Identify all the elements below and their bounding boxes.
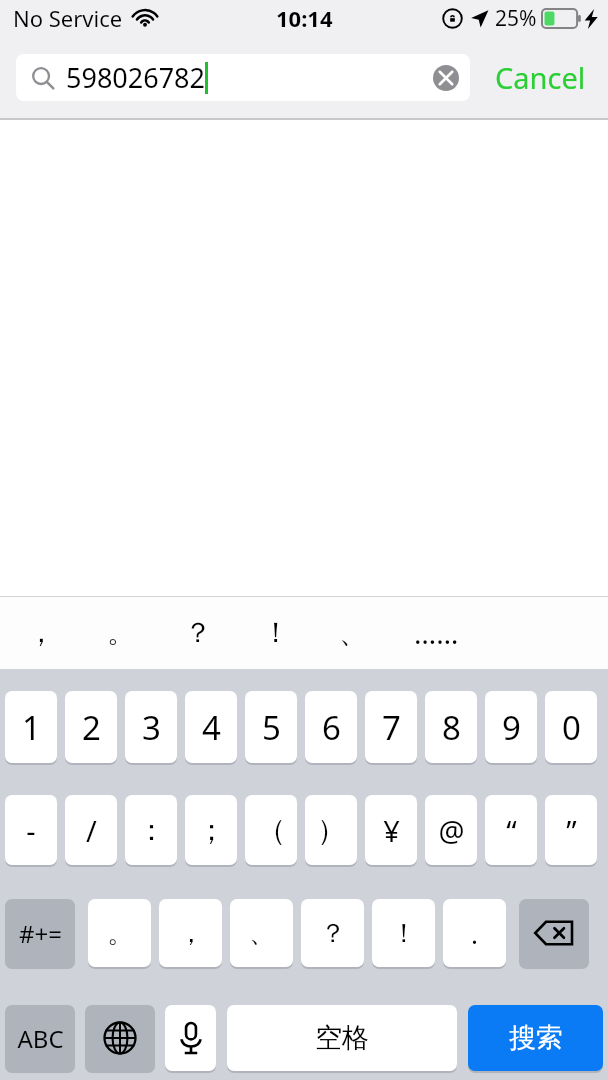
staticText: ！ bbox=[262, 615, 290, 650]
staticText: “ bbox=[506, 811, 517, 850]
button[interactable]: Delete bbox=[519, 899, 589, 967]
staticText: 。 bbox=[107, 615, 135, 650]
staticText: ， bbox=[178, 917, 204, 950]
button[interactable]: 5 bbox=[245, 691, 297, 763]
staticText: 6 bbox=[322, 705, 341, 750]
staticText: @ bbox=[438, 811, 465, 850]
button[interactable]: 3 bbox=[125, 691, 177, 763]
button[interactable]: ， bbox=[10, 596, 72, 669]
staticText: 1 bbox=[22, 705, 41, 750]
button[interactable]: ， bbox=[159, 899, 222, 967]
button[interactable]: 、 bbox=[322, 596, 384, 669]
staticText: No Service bbox=[13, 3, 123, 33]
button[interactable]: ？ bbox=[167, 596, 229, 669]
staticText: 5 bbox=[262, 705, 281, 750]
button[interactable]: 4 bbox=[185, 691, 237, 763]
staticText: ？ bbox=[184, 615, 212, 650]
button[interactable]: 0 bbox=[545, 691, 597, 763]
staticText: ABC bbox=[17, 1022, 64, 1055]
staticText: 2 bbox=[82, 705, 101, 750]
button[interactable]: 。 bbox=[90, 596, 152, 669]
staticText: ， bbox=[27, 615, 55, 650]
staticText: ？ bbox=[320, 917, 346, 950]
button[interactable]: 7 bbox=[365, 691, 417, 763]
staticText: 0 bbox=[562, 705, 581, 750]
button[interactable]: 8 bbox=[425, 691, 477, 763]
staticText: ¥ bbox=[383, 811, 400, 850]
staticText: （ bbox=[257, 812, 286, 849]
button[interactable]: ： bbox=[125, 795, 177, 865]
staticText: 9 bbox=[502, 705, 521, 750]
staticText: 、 bbox=[339, 615, 367, 650]
staticText: ； bbox=[197, 812, 226, 849]
button[interactable]: 2 bbox=[65, 691, 117, 763]
button[interactable]: ？ bbox=[301, 899, 364, 967]
button[interactable]: - bbox=[5, 795, 57, 865]
staticText: 8 bbox=[442, 705, 461, 750]
staticText: 搜索 bbox=[509, 1021, 563, 1055]
staticText: 、 bbox=[249, 917, 275, 950]
staticText: . bbox=[471, 916, 478, 951]
staticText: - bbox=[26, 811, 36, 850]
button[interactable]: 598026782 bbox=[16, 54, 470, 101]
staticText: #+= bbox=[19, 917, 62, 950]
button[interactable]: 6 bbox=[305, 691, 357, 763]
staticText: 4 bbox=[202, 705, 221, 750]
staticText: 。 bbox=[107, 917, 133, 950]
staticText: 25% bbox=[495, 4, 537, 33]
button[interactable]: （ bbox=[245, 795, 297, 865]
button[interactable]: Dictation bbox=[165, 1005, 216, 1071]
button[interactable]: …… bbox=[405, 596, 467, 669]
button[interactable]: ！ bbox=[372, 899, 435, 967]
staticText: 10:14 bbox=[276, 3, 333, 33]
button[interactable]: 。 bbox=[88, 899, 151, 967]
staticText: 空格 bbox=[315, 1021, 369, 1055]
staticText: ” bbox=[566, 811, 577, 850]
staticText: 3 bbox=[142, 705, 161, 750]
staticText: ！ bbox=[391, 917, 417, 950]
staticText: 7 bbox=[382, 705, 401, 750]
button[interactable]: 9 bbox=[485, 691, 537, 763]
button[interactable]: #+= bbox=[5, 899, 75, 967]
staticText: ： bbox=[137, 812, 166, 849]
button[interactable]: Cancel bbox=[493, 50, 588, 105]
button[interactable]: ” bbox=[545, 795, 597, 865]
button[interactable]: 1 bbox=[5, 691, 57, 763]
button[interactable]: ） bbox=[305, 795, 357, 865]
button[interactable]: ¥ bbox=[365, 795, 417, 865]
button[interactable]: ！ bbox=[245, 596, 307, 669]
staticText: …… bbox=[414, 614, 459, 652]
staticText: / bbox=[86, 811, 97, 850]
button[interactable]: Switch keyboard bbox=[85, 1005, 155, 1071]
button[interactable]: 、 bbox=[230, 899, 293, 967]
button[interactable]: ABC bbox=[5, 1005, 75, 1071]
button[interactable]: 空格 bbox=[227, 1005, 457, 1071]
button[interactable]: Clear text bbox=[431, 63, 461, 93]
staticText: ） bbox=[317, 812, 346, 849]
button[interactable]: 搜索 bbox=[468, 1005, 603, 1071]
staticText: Cancel bbox=[495, 58, 586, 97]
button[interactable]: . bbox=[443, 899, 506, 967]
button[interactable]: ； bbox=[185, 795, 237, 865]
staticText: 598026782 bbox=[66, 59, 205, 96]
button[interactable]: @ bbox=[425, 795, 477, 865]
button[interactable]: “ bbox=[485, 795, 537, 865]
button[interactable]: / bbox=[65, 795, 117, 865]
